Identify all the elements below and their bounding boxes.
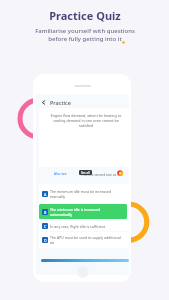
staticText: Familiarise yourself with questions befo…: [35, 27, 135, 43]
other: Back: [41, 100, 46, 105]
staticText: The minimum idle is increased automatica…: [50, 207, 101, 217]
staticText: This is a second one as: [81, 172, 117, 176]
button[interactable]: B: [39, 204, 127, 219]
staticText: The APU must be used to supply additiona…: [50, 235, 121, 245]
staticText: A: [44, 192, 47, 197]
button[interactable]: Home: [77, 266, 89, 278]
staticText: In any case, flight idle is sufficient: [50, 224, 106, 229]
staticText: D: [44, 238, 47, 243]
staticText: Practice: [50, 99, 71, 106]
button[interactable]: A: [39, 184, 129, 203]
button[interactable]: See all: [79, 170, 92, 175]
button[interactable]: Also see: [54, 171, 67, 175]
staticText: See all: [81, 171, 90, 175]
button[interactable]: C: [39, 221, 129, 231]
staticText: The minimum idle must be increased manua…: [50, 189, 111, 199]
staticText: C: [44, 224, 47, 229]
button[interactable]: Next question: [41, 259, 129, 262]
button[interactable]: D: [39, 232, 129, 248]
staticText: Engine flow demand, when the heating or …: [50, 113, 122, 128]
button[interactable]: Google: [117, 170, 123, 176]
button[interactable]: Back: [41, 96, 83, 108]
staticText: B: [44, 210, 47, 215]
staticText: Practice Quiz: [49, 8, 121, 23]
